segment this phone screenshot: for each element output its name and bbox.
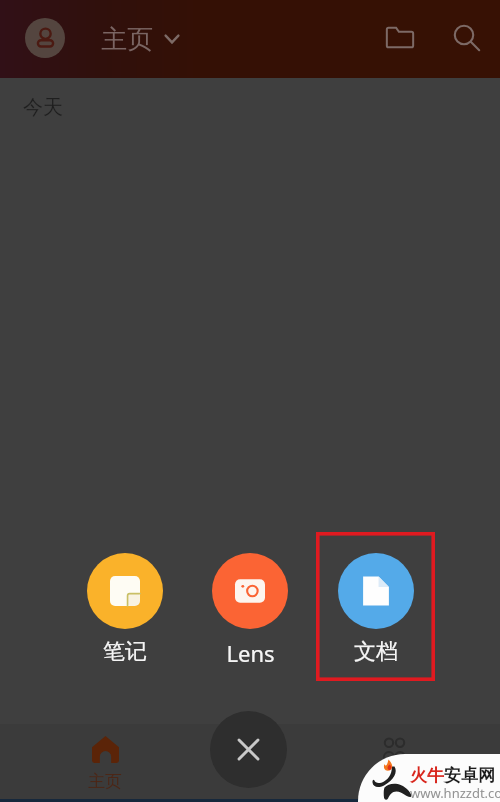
staticText: 火牛 [410, 765, 444, 786]
button[interactable]: 主页 [65, 736, 145, 798]
button[interactable]: Folders [376, 13, 424, 61]
staticText: 今天 [23, 95, 63, 120]
button[interactable]: Close [210, 711, 287, 788]
button[interactable]: 笔记 [80, 553, 170, 666]
button[interactable]: Account [25, 18, 65, 58]
staticText: 主页 [101, 23, 153, 56]
button[interactable]: Search [443, 14, 491, 62]
staticText: 安卓网 [444, 765, 495, 786]
button[interactable]: 文档 [331, 553, 421, 666]
button[interactable]: 主页 [96, 12, 188, 66]
button[interactable]: Lens [205, 553, 295, 668]
staticText: Lens [226, 638, 275, 668]
staticText: www.hnzzdt.com [410, 784, 500, 802]
staticText: 文档 [354, 638, 398, 666]
staticText: 主页 [88, 771, 122, 792]
button[interactable]: 共享 [354, 736, 434, 798]
staticText: 共享 [377, 771, 411, 792]
staticText: 笔记 [103, 638, 147, 666]
